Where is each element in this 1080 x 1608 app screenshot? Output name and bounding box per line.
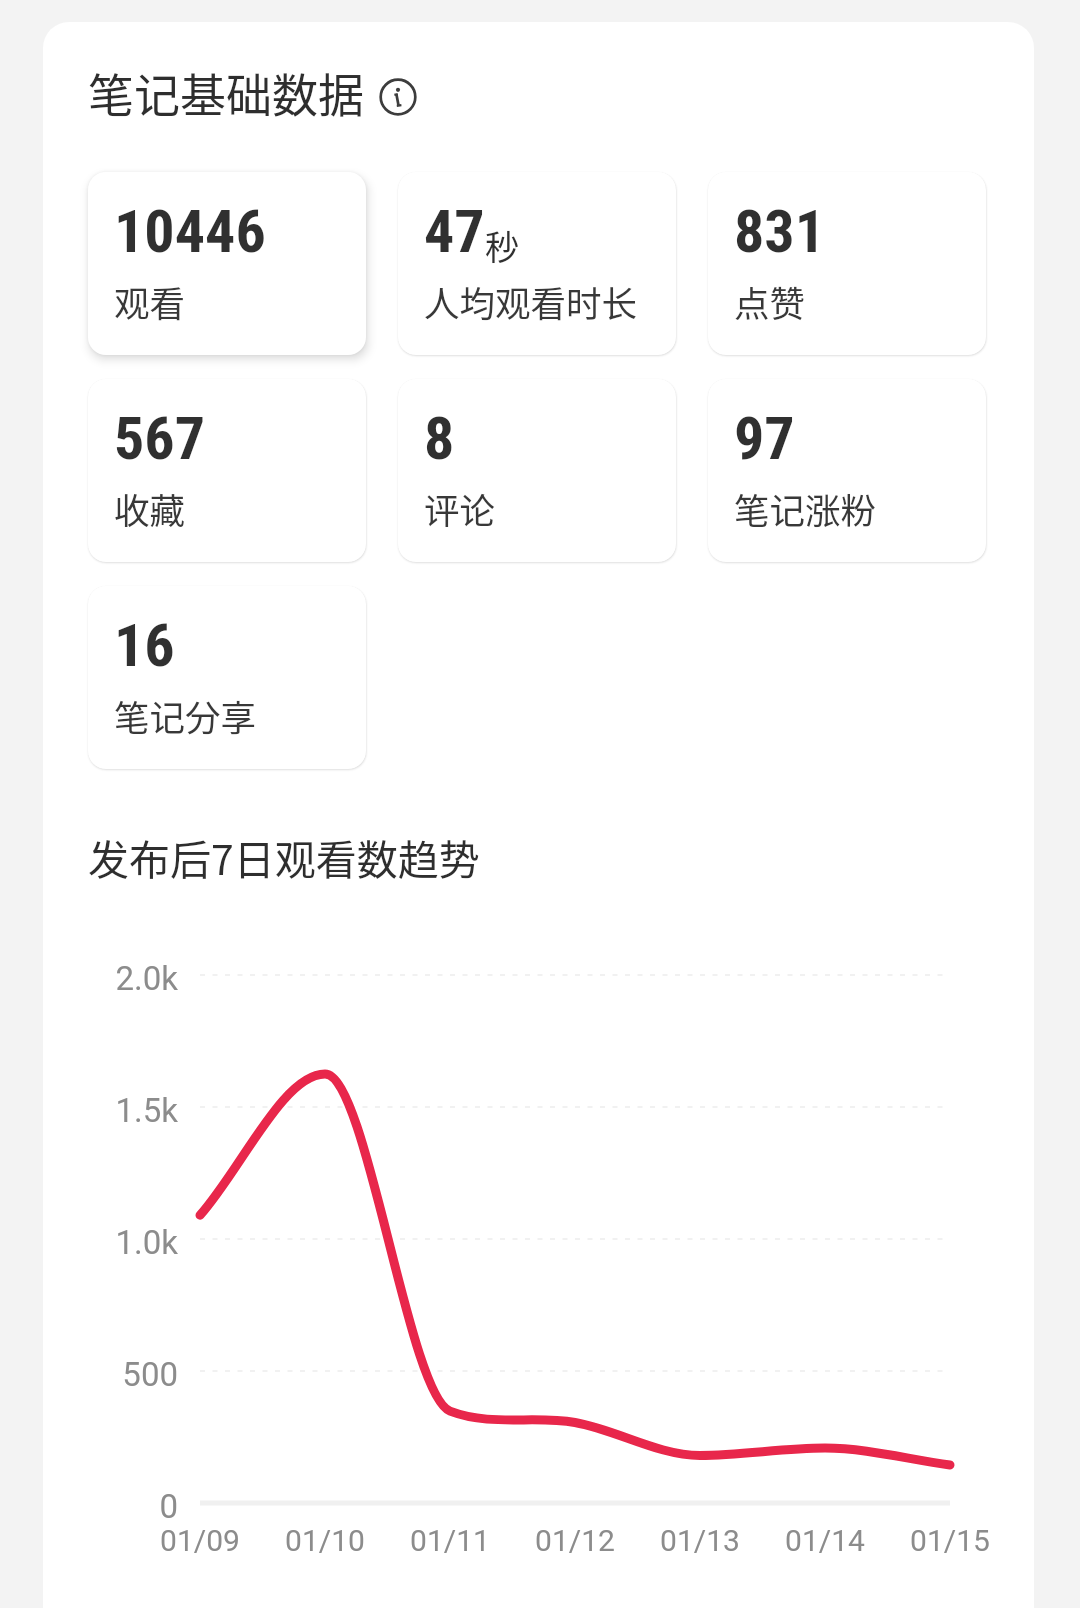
staticText: 笔记涨粉 [734, 483, 877, 534]
staticText: 01/15 [880, 1523, 1020, 1558]
button[interactable]: 831 [708, 172, 986, 355]
staticText: 47 [424, 196, 485, 266]
staticText: 发布后7日观看数趋势 [88, 827, 480, 886]
staticText: 500 [78, 1355, 178, 1394]
staticText: 1.5k [78, 1091, 178, 1130]
button[interactable]: 10446 [88, 172, 366, 355]
staticText: 01/13 [630, 1523, 770, 1558]
button[interactable]: 97 [708, 379, 986, 562]
staticText: 01/11 [380, 1523, 520, 1558]
staticText: 秒 [485, 221, 519, 270]
staticText: 01/09 [130, 1523, 270, 1558]
staticText: 16 [114, 610, 175, 680]
staticText: 01/10 [255, 1523, 395, 1558]
staticText: 笔记基础数据 [88, 59, 364, 126]
staticText: 人均观看时长 [424, 276, 638, 327]
staticText: 01/14 [755, 1523, 895, 1558]
staticText: 2.0k [78, 959, 178, 998]
staticText: 1.0k [78, 1223, 178, 1262]
button[interactable]: 8 [398, 379, 676, 562]
staticText: 收藏 [114, 483, 186, 534]
staticText: 97 [734, 403, 795, 473]
staticText: 观看 [114, 276, 186, 327]
staticText: 567 [114, 403, 206, 473]
staticText: 831 [734, 196, 826, 266]
button[interactable]: 567 [88, 379, 366, 562]
button[interactable]: Info [377, 76, 419, 118]
button[interactable]: 16 [88, 586, 366, 769]
staticText: 评论 [424, 483, 496, 534]
staticText: 8 [424, 403, 455, 473]
staticText: 0 [78, 1487, 178, 1526]
staticText: 点赞 [734, 276, 806, 327]
staticText: 10446 [114, 196, 266, 266]
button[interactable]: 47 [398, 172, 676, 355]
staticText: 笔记分享 [114, 690, 257, 741]
staticText: 01/12 [505, 1523, 645, 1558]
